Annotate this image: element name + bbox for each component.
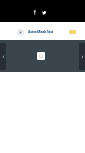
- button[interactable]: Next: [79, 43, 85, 70]
- button[interactable]: Facebook: [33, 9, 37, 15]
- button[interactable]: Home logo: [17, 29, 24, 36]
- staticText: Astra Maak Tast: [28, 29, 54, 34]
- button[interactable]: Previous: [0, 43, 6, 70]
- button[interactable]: Twitter: [42, 10, 47, 15]
- button[interactable]: Menu: [69, 30, 76, 34]
